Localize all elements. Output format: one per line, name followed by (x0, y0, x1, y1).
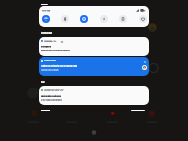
staticText: Facebook · nu (44, 39, 56, 41)
button[interactable]: Bluetooth (61, 15, 69, 23)
button[interactable]: Android Setup (142, 65, 147, 70)
staticText: 9 van 9 apps geïnstalleerd (41, 98, 62, 100)
staticText: Facebook (41, 45, 51, 48)
staticText: Google Play Store · 5m (45, 88, 65, 90)
button[interactable]: Alles wissen (130, 107, 146, 113)
staticText: Facebook · nu (44, 40, 56, 42)
staticText: Installatie voltooid (41, 95, 61, 98)
staticText: 9 van 9 apps geïnstalleerd (41, 98, 62, 100)
staticText: 89% (142, 9, 146, 11)
staticText: Zoek vrienden en zie wat er gebeurt. (41, 49, 70, 51)
staticText: 89% (142, 10, 146, 12)
staticText: Beheren (41, 109, 50, 112)
staticText: 9 van 9 apps geïnstalleerd (41, 99, 62, 101)
button[interactable]: Facebook · nu (39, 37, 149, 56)
staticText: Google Play Store · 5m (44, 88, 64, 90)
staticText: Zoek vrienden en zie wat er gebeurt. (41, 49, 70, 51)
staticText: Voltooi de installatie van je nieuwe Pix… (41, 64, 78, 66)
staticText: 12:39 (41, 2, 48, 5)
staticText: Installatie voltooid (41, 94, 61, 97)
button[interactable]: Google Play Store · 5m (39, 86, 149, 105)
button[interactable]: Batterijbesparing (139, 15, 147, 23)
button[interactable]: Automatisch draaien (119, 15, 127, 23)
staticText: Voltooi de installatie van je nieuwe Pix… (41, 65, 78, 67)
staticText: Zoek vrienden en zie wat er gebeurt. (41, 49, 70, 51)
staticText: Installatie voltooid (41, 95, 61, 98)
staticText: Wi-Fi aan (42, 9, 51, 12)
staticText: Stil (41, 80, 45, 83)
staticText: Facebook (41, 45, 51, 48)
staticText: Meldingen (41, 31, 53, 34)
staticText: 89% (142, 9, 146, 11)
staticText: Installatie voltooid (41, 95, 61, 98)
staticText: 12:39 (42, 2, 49, 5)
staticText: Facebook · nu (45, 40, 57, 42)
staticText: Zoek vrienden en zie wat er gebeurt. (41, 49, 70, 51)
staticText: Meldingen (41, 31, 53, 34)
staticText: Meldingen (41, 32, 53, 35)
staticText: Alles wissen (132, 109, 145, 112)
button[interactable]: Wi-Fi (42, 15, 50, 23)
staticText: 89% (142, 9, 146, 11)
staticText: Nog een paar stappen (41, 68, 59, 70)
button[interactable]: Beheren (39, 107, 51, 113)
staticText: Google Play Store · 5m (44, 89, 64, 91)
staticText: Facebook (41, 45, 51, 48)
staticText: Wi-Fi aan (42, 9, 51, 12)
staticText: Beheren (41, 109, 50, 112)
staticText: Wi-Fi aan (42, 10, 51, 13)
staticText: 9 van 9 apps geïnstalleerd (41, 99, 62, 101)
staticText: Stil (41, 81, 45, 84)
staticText: Nog een paar stappen (41, 69, 59, 71)
staticText: Alles wissen (131, 109, 144, 112)
button[interactable]: Android Setup (39, 57, 149, 76)
button[interactable]: Niet storen (80, 15, 88, 23)
staticText: Google Play Store · 5m (44, 89, 64, 91)
staticText: Wi-Fi aan (42, 9, 51, 12)
staticText: Facebook (41, 46, 51, 49)
staticText: Android Setup (44, 59, 57, 61)
staticText: Beheren (41, 109, 50, 112)
staticText: Android Setup (44, 59, 57, 61)
button[interactable]: Zaklamp (100, 15, 108, 23)
staticText: 12:39 (41, 2, 48, 5)
staticText: Alles wissen (131, 109, 144, 112)
staticText: Facebook · nu (44, 40, 56, 42)
staticText: 12:39 (41, 2, 48, 5)
staticText: Meldingen (41, 32, 53, 35)
staticText: Stil (41, 81, 45, 84)
staticText: Stil (41, 80, 45, 83)
staticText: Beheren (41, 109, 50, 112)
staticText: Alles wissen (132, 109, 145, 112)
